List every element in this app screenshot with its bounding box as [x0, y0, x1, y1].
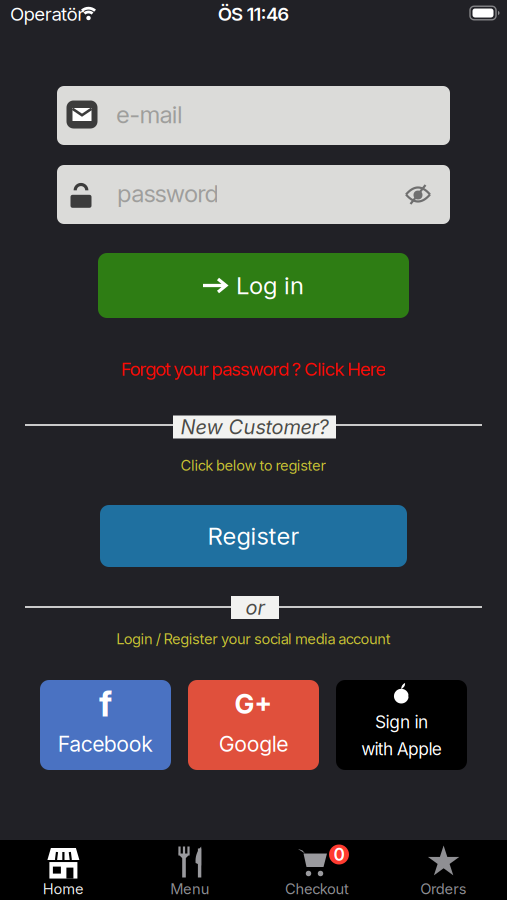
button[interactable]: Menu: [150, 840, 230, 900]
button[interactable]: Orders: [404, 840, 484, 900]
button[interactable]: Home: [23, 840, 103, 900]
staticText: Sign in: [375, 712, 428, 732]
staticText: f: [99, 684, 112, 724]
staticText: Log in: [236, 271, 304, 300]
staticText: Login / Register your social media accou…: [116, 630, 391, 648]
staticText: e-mail: [116, 100, 183, 129]
staticText: or: [245, 596, 264, 619]
button[interactable]: Forgot your password ? Click Here: [121, 358, 386, 380]
staticText: Menu: [170, 880, 210, 898]
staticText: Click below to register: [181, 457, 326, 474]
staticText: Forgot your password ? Click Here: [121, 358, 386, 380]
button[interactable]: e-mail: [57, 86, 450, 145]
staticText: Facebook: [58, 731, 153, 757]
button[interactable]: Log in: [98, 253, 409, 318]
staticText: Register: [207, 522, 299, 550]
staticText: Google: [219, 731, 288, 757]
staticText: G+: [234, 688, 272, 720]
button[interactable]: G+: [188, 680, 319, 770]
button[interactable]: password: [57, 165, 450, 224]
button[interactable]: Sign in: [336, 680, 467, 770]
staticText: Operatör: [10, 3, 84, 25]
staticText: Home: [43, 880, 84, 898]
staticText: Orders: [420, 880, 467, 898]
button[interactable]: Register: [100, 505, 407, 567]
button[interactable]: Show password: [405, 184, 431, 204]
staticText: ÖS 11:46: [218, 3, 289, 25]
staticText: Checkout: [285, 880, 349, 898]
staticText: New Customer?: [180, 415, 328, 439]
staticText: password: [117, 179, 218, 208]
button[interactable]: Checkout: [277, 840, 357, 900]
button[interactable]: f: [40, 680, 171, 770]
staticText: 0: [333, 844, 344, 865]
staticText: with Apple: [361, 739, 442, 759]
